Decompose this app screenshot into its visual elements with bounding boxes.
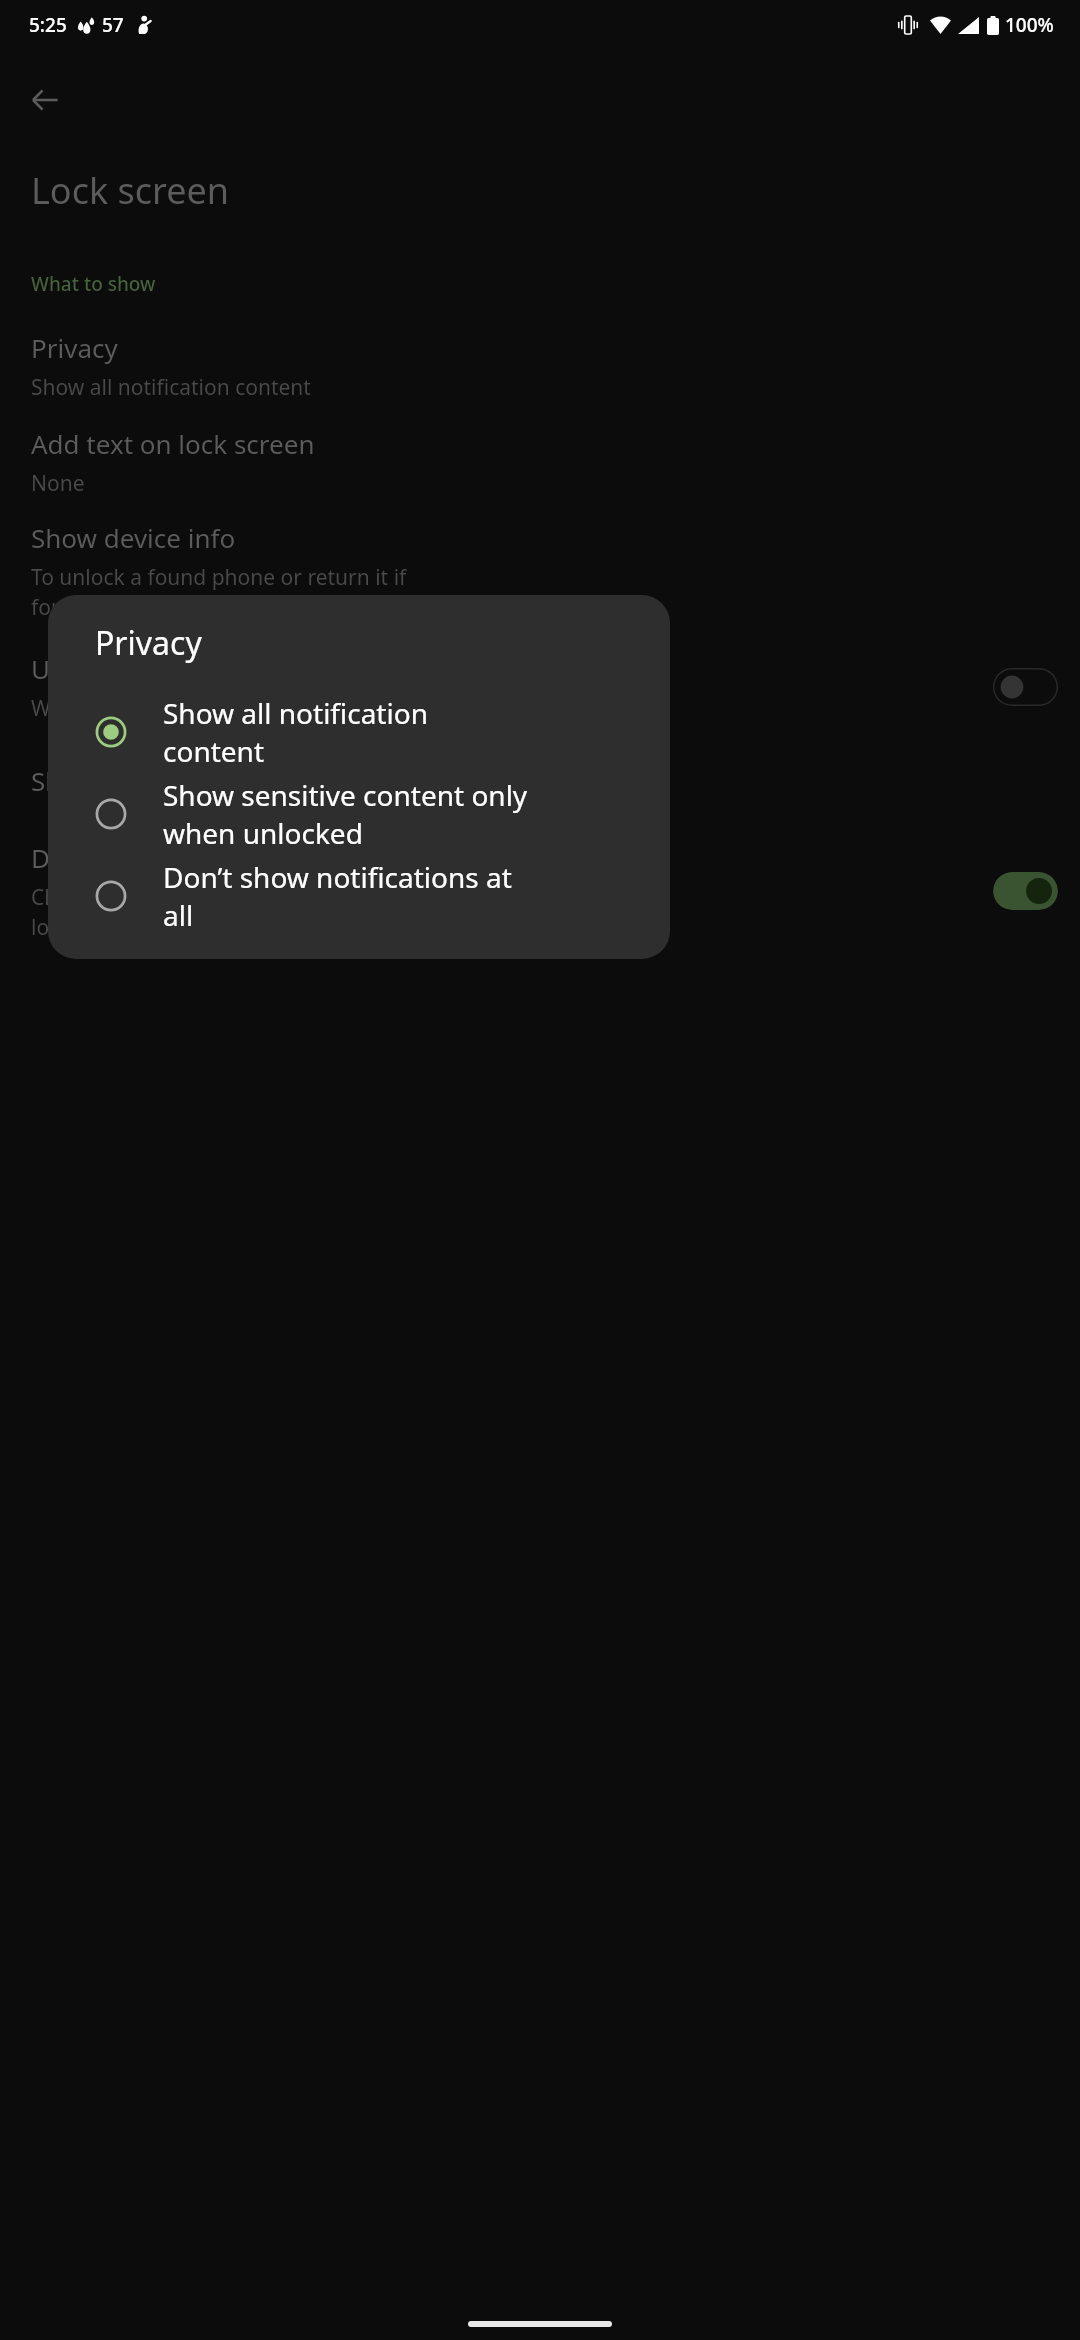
staticText: Privacy	[95, 621, 202, 665]
staticText: Add text on lock screen	[31, 426, 315, 461]
staticText: Clock size changes according to lock scr…	[31, 883, 343, 941]
button[interactable]: Add text on lock screen	[0, 426, 1080, 498]
staticText: Show sensitive content only when unlocke…	[163, 776, 528, 852]
staticText: To unlock a found phone or return it if …	[31, 563, 407, 621]
staticText: None	[31, 469, 85, 498]
button[interactable]: Privacy	[0, 330, 1080, 402]
staticText: Show all notification content	[31, 373, 311, 402]
button[interactable]: Use device controls	[0, 651, 1080, 723]
staticText: Shortcuts	[31, 763, 148, 798]
staticText: 57	[102, 12, 124, 38]
staticText: Use device controls	[31, 651, 267, 686]
button[interactable]: Don’t show notifications at all	[48, 855, 670, 937]
staticText: Show device info	[31, 520, 236, 555]
staticText: 5:25	[29, 12, 67, 38]
button[interactable]: Off	[993, 668, 1058, 706]
button[interactable]: Back	[23, 78, 67, 122]
staticText: Without unlocking your phone	[31, 694, 332, 723]
staticText: Lock screen	[31, 166, 230, 215]
staticText: Privacy	[31, 330, 118, 365]
button[interactable]: Show all notification content	[48, 691, 670, 773]
button[interactable]: On	[993, 872, 1058, 910]
staticText: What to show	[31, 271, 156, 297]
staticText: 100%	[1005, 12, 1054, 38]
button[interactable]: Show sensitive content only when unlocke…	[48, 773, 670, 855]
button[interactable]: Show device info	[0, 520, 1080, 621]
staticText: Show all notification content	[163, 694, 428, 770]
staticText: Dynamic clock	[31, 840, 206, 875]
staticText: Don’t show notifications at all	[163, 858, 512, 934]
button[interactable]: Dynamic clock	[0, 840, 1080, 941]
